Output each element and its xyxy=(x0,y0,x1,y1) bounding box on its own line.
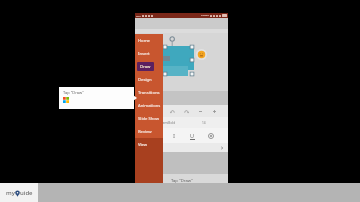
staticText: my xyxy=(6,189,15,197)
staticText: 9:01 xyxy=(136,14,141,17)
button[interactable]: Animations xyxy=(135,99,163,112)
staticText: Home xyxy=(138,38,150,44)
button[interactable]: View xyxy=(135,138,163,151)
button[interactable]: Undo xyxy=(168,107,177,116)
staticText: Review xyxy=(138,129,152,135)
staticText: U xyxy=(190,132,195,139)
staticText: Insert xyxy=(138,51,150,57)
staticText: SemiBold xyxy=(161,121,176,125)
staticText: Animations xyxy=(138,103,161,109)
button[interactable]: Underline xyxy=(188,131,197,140)
button[interactable]: Draw xyxy=(135,60,163,73)
button[interactable]: myguide logo xyxy=(0,183,38,202)
staticText: Slide Show xyxy=(138,116,160,122)
button[interactable]: Italic xyxy=(170,131,179,140)
staticText: Transitions xyxy=(138,90,160,96)
button[interactable]: Design xyxy=(135,73,163,86)
staticText: uide xyxy=(20,189,33,197)
button[interactable]: Insert xyxy=(135,47,163,60)
button[interactable]: Selected shape xyxy=(137,46,194,70)
button[interactable]: Cut xyxy=(196,107,205,116)
staticText: I xyxy=(173,132,176,140)
staticText: Tap "Draw" xyxy=(63,90,84,95)
button[interactable]: Text effects xyxy=(206,131,215,140)
staticText: Tap "Draw" xyxy=(171,178,193,184)
staticText: Draw xyxy=(140,64,151,70)
button[interactable]: Home xyxy=(135,34,163,47)
button[interactable]: Tap "Draw" xyxy=(59,87,134,109)
button[interactable]: Review xyxy=(135,125,163,138)
staticText: Design xyxy=(138,77,152,83)
staticText: 14 xyxy=(202,121,206,125)
staticText: 4.5KB/s xyxy=(201,14,209,17)
button[interactable]: Slide Show xyxy=(135,112,163,125)
button[interactable]: Transitions xyxy=(135,86,163,99)
button[interactable]: Redo xyxy=(182,107,191,116)
staticText: View xyxy=(138,142,148,148)
button[interactable]: More xyxy=(210,107,219,116)
